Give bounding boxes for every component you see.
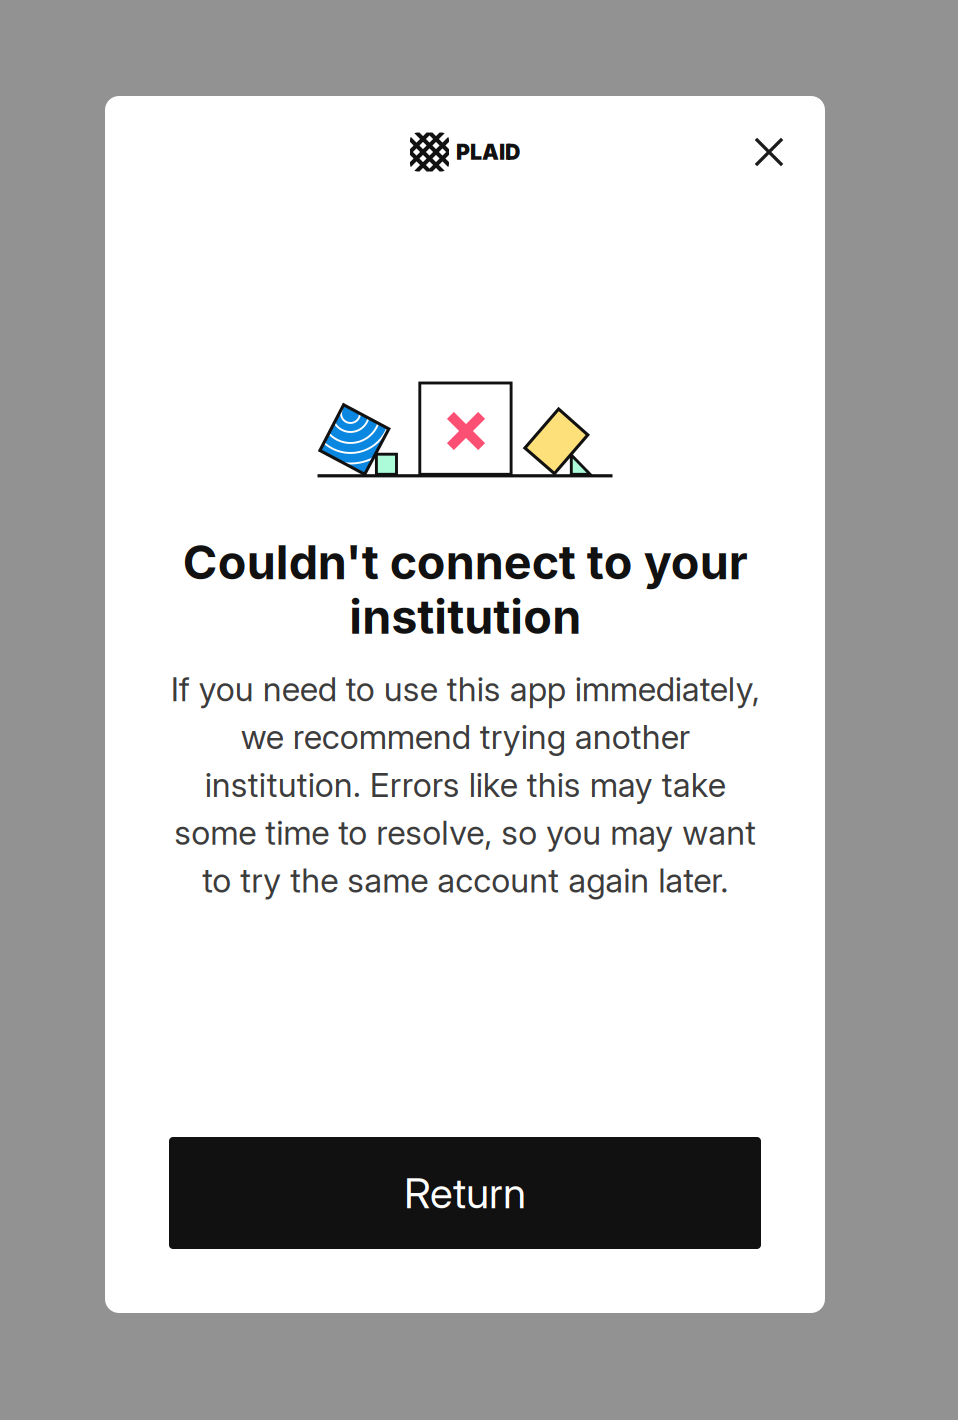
staticText: Couldn't connect to your institution: [182, 534, 747, 645]
staticText: Return: [404, 1167, 526, 1218]
staticText: If you need to use this app immediately,…: [170, 669, 759, 901]
button[interactable]: Close: [741, 124, 797, 180]
staticText: PLAID: [456, 139, 520, 165]
button[interactable]: Return: [169, 1137, 761, 1249]
